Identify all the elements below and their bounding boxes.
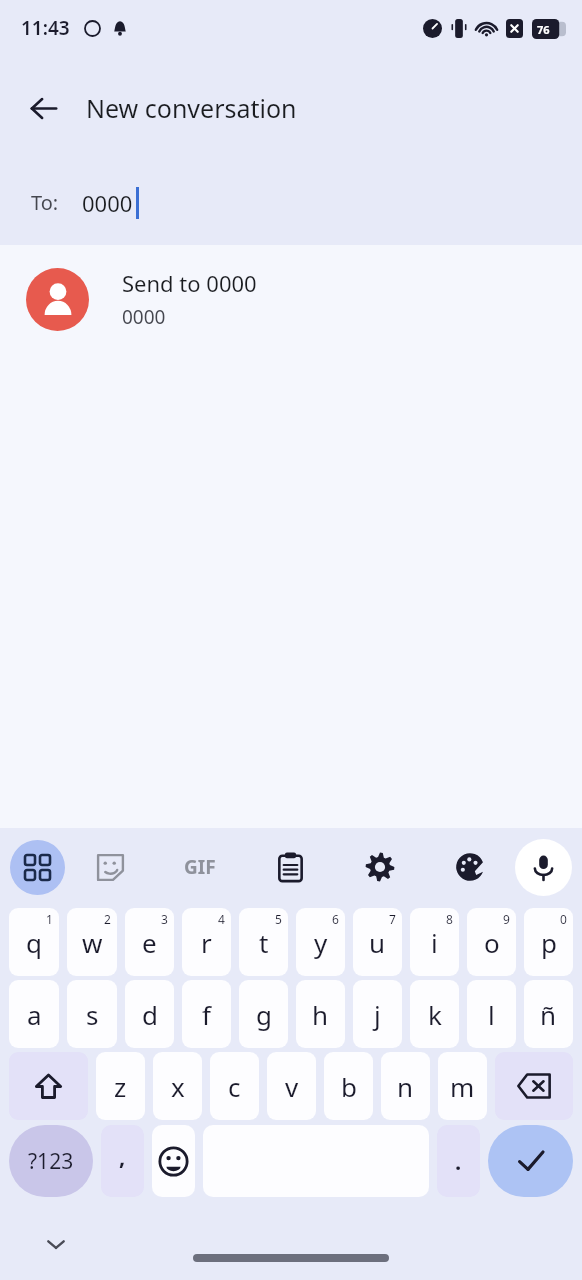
staticText: y xyxy=(314,925,328,960)
button[interactable]: Hide keyboard xyxy=(34,1222,78,1266)
staticText: 1 xyxy=(46,911,53,927)
staticText: 0 xyxy=(560,911,567,927)
button[interactable]: Themes xyxy=(442,839,498,895)
staticText: Send to 0000 xyxy=(122,268,257,298)
button[interactable]: ?123 xyxy=(9,1125,93,1197)
staticText: 7 xyxy=(389,911,396,927)
button[interactable]: Clipboard xyxy=(262,839,318,895)
button[interactable]: x xyxy=(153,1052,202,1120)
staticText: n xyxy=(397,1069,414,1104)
staticText: u xyxy=(369,925,386,960)
staticText: f xyxy=(202,997,211,1032)
staticText: q xyxy=(26,925,42,960)
button[interactable]: r xyxy=(182,908,231,976)
staticText: 8 xyxy=(446,911,453,927)
button[interactable]: c xyxy=(210,1052,259,1120)
button[interactable]: GIF xyxy=(172,839,228,895)
staticText: 0000 xyxy=(82,188,133,218)
staticText: 76 xyxy=(537,22,550,37)
button[interactable]: m xyxy=(438,1052,487,1120)
staticText: j xyxy=(374,997,381,1032)
button[interactable]: p xyxy=(524,908,573,976)
button[interactable]: e xyxy=(125,908,174,976)
button[interactable]: w xyxy=(67,908,117,976)
staticText: g xyxy=(256,997,272,1032)
staticText: l xyxy=(488,997,495,1032)
button[interactable]: d xyxy=(125,980,174,1048)
button[interactable]: t xyxy=(239,908,288,976)
staticText: c xyxy=(228,1069,241,1104)
button[interactable]: Stickers xyxy=(82,839,138,895)
button[interactable]: Send xyxy=(488,1125,573,1197)
button[interactable]: q xyxy=(9,908,59,976)
button[interactable]: Shift xyxy=(9,1052,88,1120)
button[interactable]: a xyxy=(9,980,59,1048)
button[interactable]: z xyxy=(96,1052,145,1120)
staticText: To: xyxy=(31,189,59,216)
staticText: k xyxy=(428,997,442,1032)
staticText: ?123 xyxy=(28,1147,74,1176)
button[interactable]: y xyxy=(296,908,345,976)
button[interactable]: k xyxy=(410,980,459,1048)
staticText: GIF xyxy=(184,854,216,880)
button[interactable]: n xyxy=(381,1052,430,1120)
staticText: 6 xyxy=(332,911,339,927)
staticText: w xyxy=(82,925,103,960)
button[interactable]: Apps xyxy=(10,840,65,895)
button[interactable]: u xyxy=(353,908,402,976)
button[interactable]: h xyxy=(296,980,345,1048)
button[interactable]: v xyxy=(267,1052,316,1120)
staticText: b xyxy=(341,1069,357,1104)
button[interactable]: Emoji xyxy=(152,1125,195,1197)
button[interactable]: To: xyxy=(0,160,582,245)
staticText: 9 xyxy=(503,911,510,927)
button[interactable]: . xyxy=(437,1125,480,1197)
button[interactable]: b xyxy=(324,1052,373,1120)
staticText: 4 xyxy=(218,911,225,927)
staticText: o xyxy=(484,925,500,960)
button[interactable]: o xyxy=(467,908,516,976)
staticText: 0000 xyxy=(122,304,166,330)
staticText: ñ xyxy=(540,997,557,1032)
button[interactable]: Voice input xyxy=(515,839,572,896)
button[interactable]: j xyxy=(353,980,402,1048)
button[interactable]: i xyxy=(410,908,459,976)
staticText: a xyxy=(27,997,42,1032)
button[interactable]: Backspace xyxy=(495,1052,573,1120)
staticText: e xyxy=(142,925,157,960)
button[interactable]: , xyxy=(101,1125,144,1197)
staticText: x xyxy=(171,1069,185,1104)
staticText: m xyxy=(450,1069,475,1104)
staticText: p xyxy=(541,925,557,960)
staticText: h xyxy=(312,997,329,1032)
button[interactable]: Send to 0000 xyxy=(0,245,582,353)
button[interactable]: g xyxy=(239,980,288,1048)
staticText: New conversation xyxy=(86,91,297,125)
button[interactable]: s xyxy=(67,980,117,1048)
button[interactable]: Settings xyxy=(352,839,408,895)
button[interactable]: Back xyxy=(14,79,72,137)
staticText: 5 xyxy=(275,911,282,927)
staticText: i xyxy=(431,925,438,960)
staticText: 2 xyxy=(104,911,111,927)
button[interactable]: ñ xyxy=(524,980,573,1048)
staticText: v xyxy=(285,1069,299,1104)
staticText: . xyxy=(455,1146,462,1176)
staticText: 11:43 xyxy=(21,15,70,41)
button[interactable]: f xyxy=(182,980,231,1048)
staticText: 3 xyxy=(161,911,168,927)
staticText: z xyxy=(114,1069,127,1104)
staticText: t xyxy=(259,925,269,960)
staticText: , xyxy=(119,1141,126,1171)
button[interactable]: l xyxy=(467,980,516,1048)
staticText: r xyxy=(201,925,212,960)
staticText: s xyxy=(86,997,99,1032)
staticText: d xyxy=(142,997,158,1032)
